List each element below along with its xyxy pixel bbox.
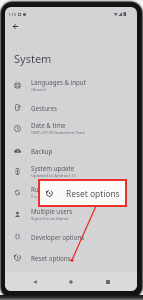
staticText: Date & time bbox=[31, 121, 66, 129]
staticText: Updated to Android 13 bbox=[31, 173, 76, 179]
staticText: Languages & input bbox=[31, 78, 86, 86]
staticText: Reset options bbox=[66, 188, 120, 199]
staticText: Multiple users bbox=[31, 207, 73, 215]
staticText: Developer options bbox=[31, 233, 85, 241]
staticText: GMT+07:00 Indochina Time bbox=[31, 130, 85, 136]
button[interactable]: Recents bbox=[102, 276, 114, 288]
staticText: Rules bbox=[31, 185, 47, 193]
button[interactable]: Back bbox=[8, 19, 22, 33]
button[interactable]: Date & time bbox=[5, 118, 137, 139]
staticText: System bbox=[14, 51, 52, 66]
button[interactable]: Backup bbox=[5, 140, 137, 161]
staticText: Gboard bbox=[31, 87, 46, 93]
staticText: Reset options bbox=[31, 254, 71, 262]
staticText: Signed in as Owner bbox=[31, 216, 70, 222]
button[interactable]: System update bbox=[5, 161, 137, 182]
button[interactable]: Multiple users bbox=[5, 204, 137, 225]
button[interactable]: Rules bbox=[5, 182, 137, 203]
button[interactable]: Gestures bbox=[5, 97, 137, 118]
button[interactable]: Languages & input bbox=[5, 75, 137, 96]
staticText: System update bbox=[31, 164, 75, 172]
button[interactable]: Home bbox=[65, 276, 77, 288]
staticText: Gestures bbox=[31, 104, 57, 112]
staticText: Backup bbox=[31, 147, 53, 155]
staticText: 0 rules bbox=[31, 194, 45, 200]
staticText: 1:10 bbox=[8, 12, 16, 17]
button[interactable]: Reset options bbox=[5, 247, 137, 268]
button[interactable]: Developer options bbox=[5, 226, 137, 247]
button[interactable]: Back bbox=[29, 276, 41, 288]
